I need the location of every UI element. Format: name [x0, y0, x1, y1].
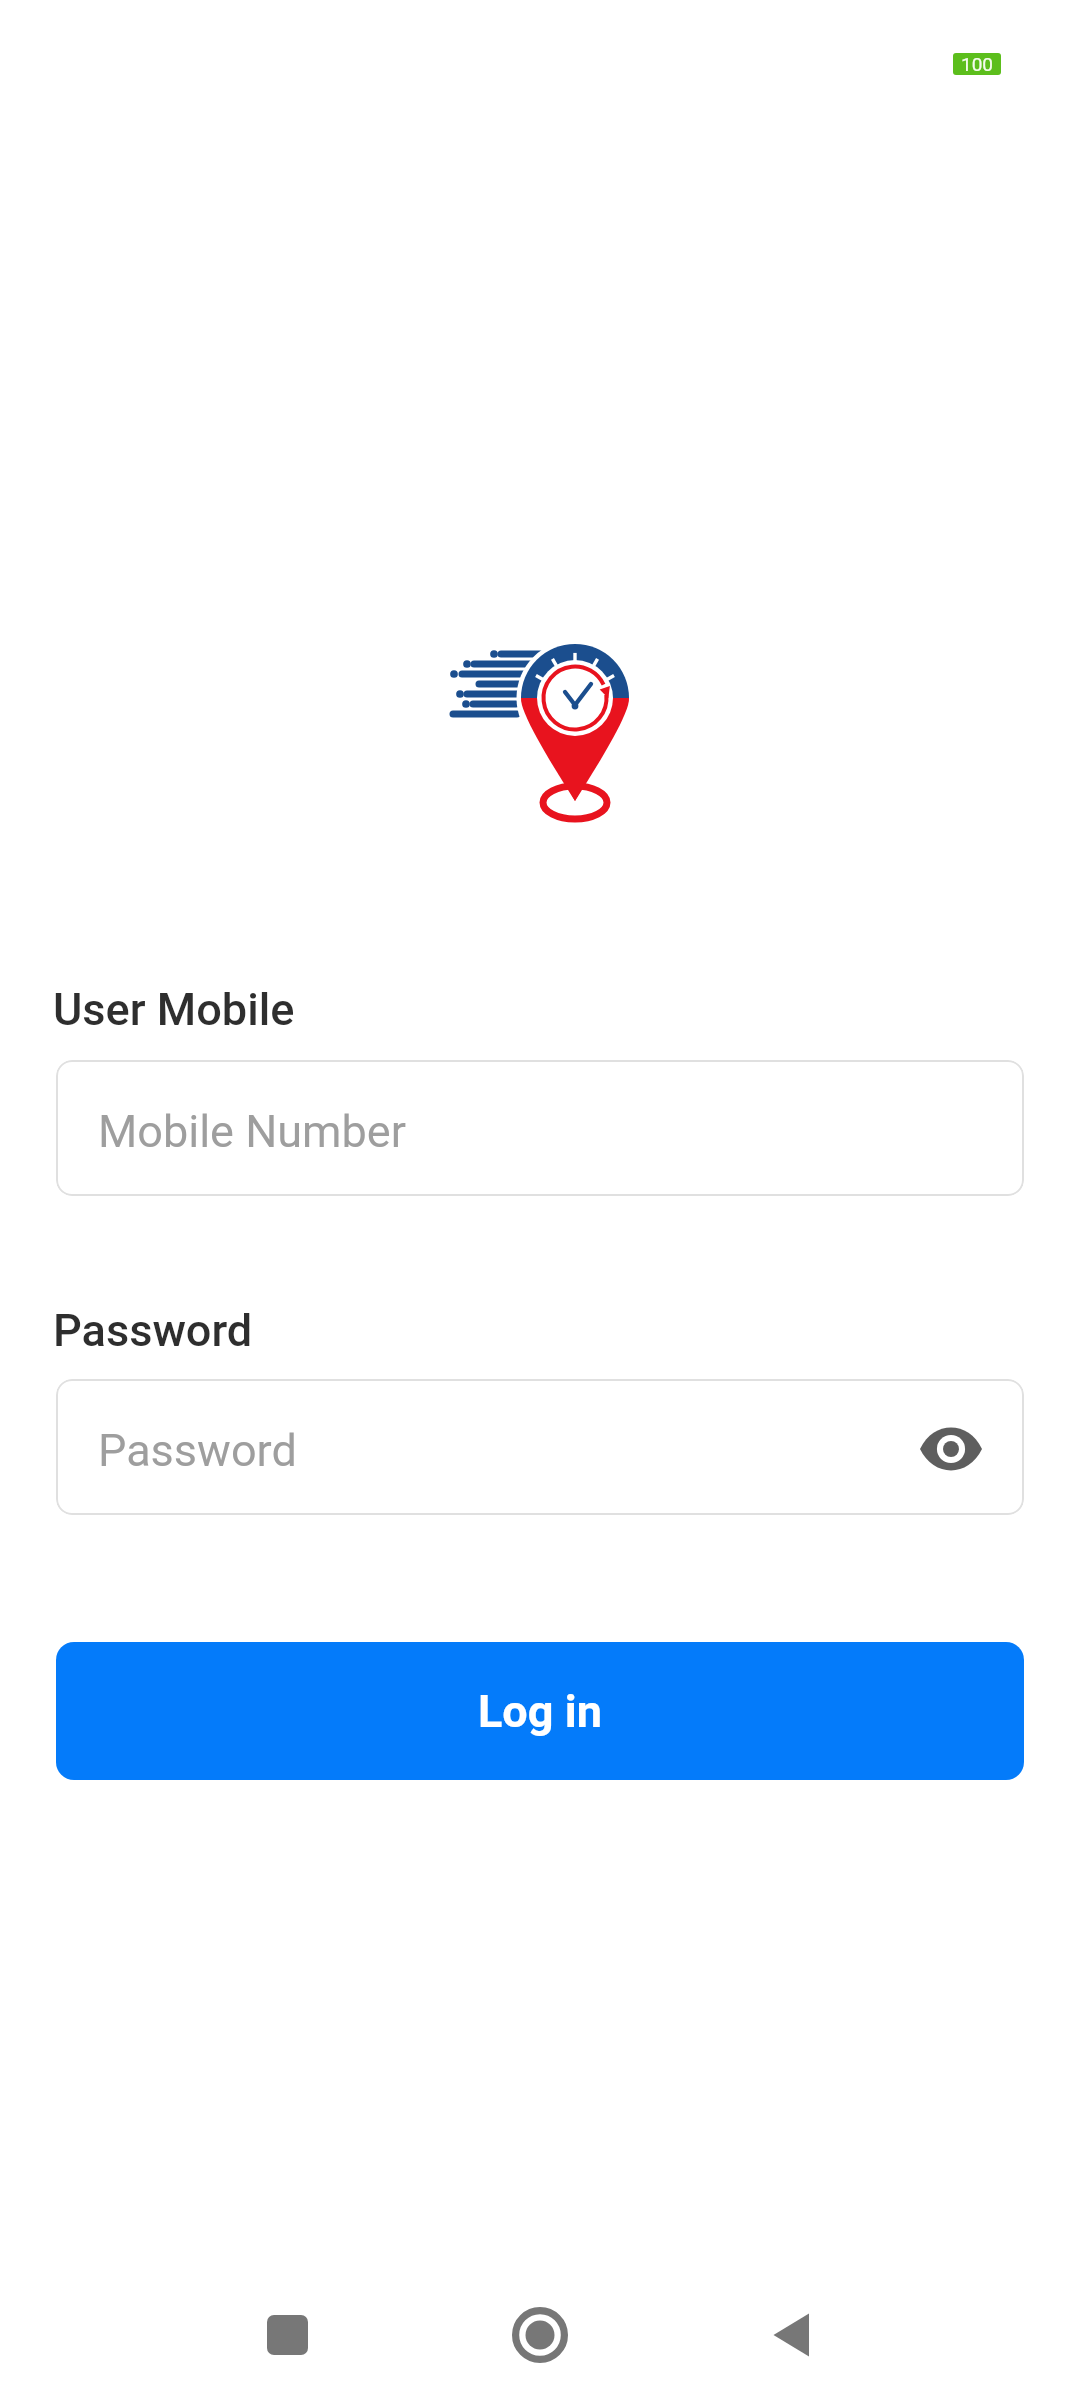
button[interactable]: Password	[56, 1379, 1024, 1515]
staticText: Password	[53, 1304, 253, 1357]
button[interactable]: Mobile Number	[56, 1060, 1024, 1196]
staticText: 100	[961, 53, 994, 75]
button[interactable]: Show password	[903, 1401, 999, 1497]
staticText: Mobile Number	[98, 1105, 406, 1158]
staticText: Log in	[478, 1685, 602, 1738]
button[interactable]: Log in	[56, 1642, 1024, 1780]
button[interactable]: Recent apps	[227, 2275, 347, 2395]
button[interactable]: Back	[730, 2275, 850, 2395]
staticText: Password	[98, 1424, 297, 1477]
staticText: User Mobile	[53, 983, 295, 1036]
button[interactable]: Home	[480, 2275, 600, 2395]
